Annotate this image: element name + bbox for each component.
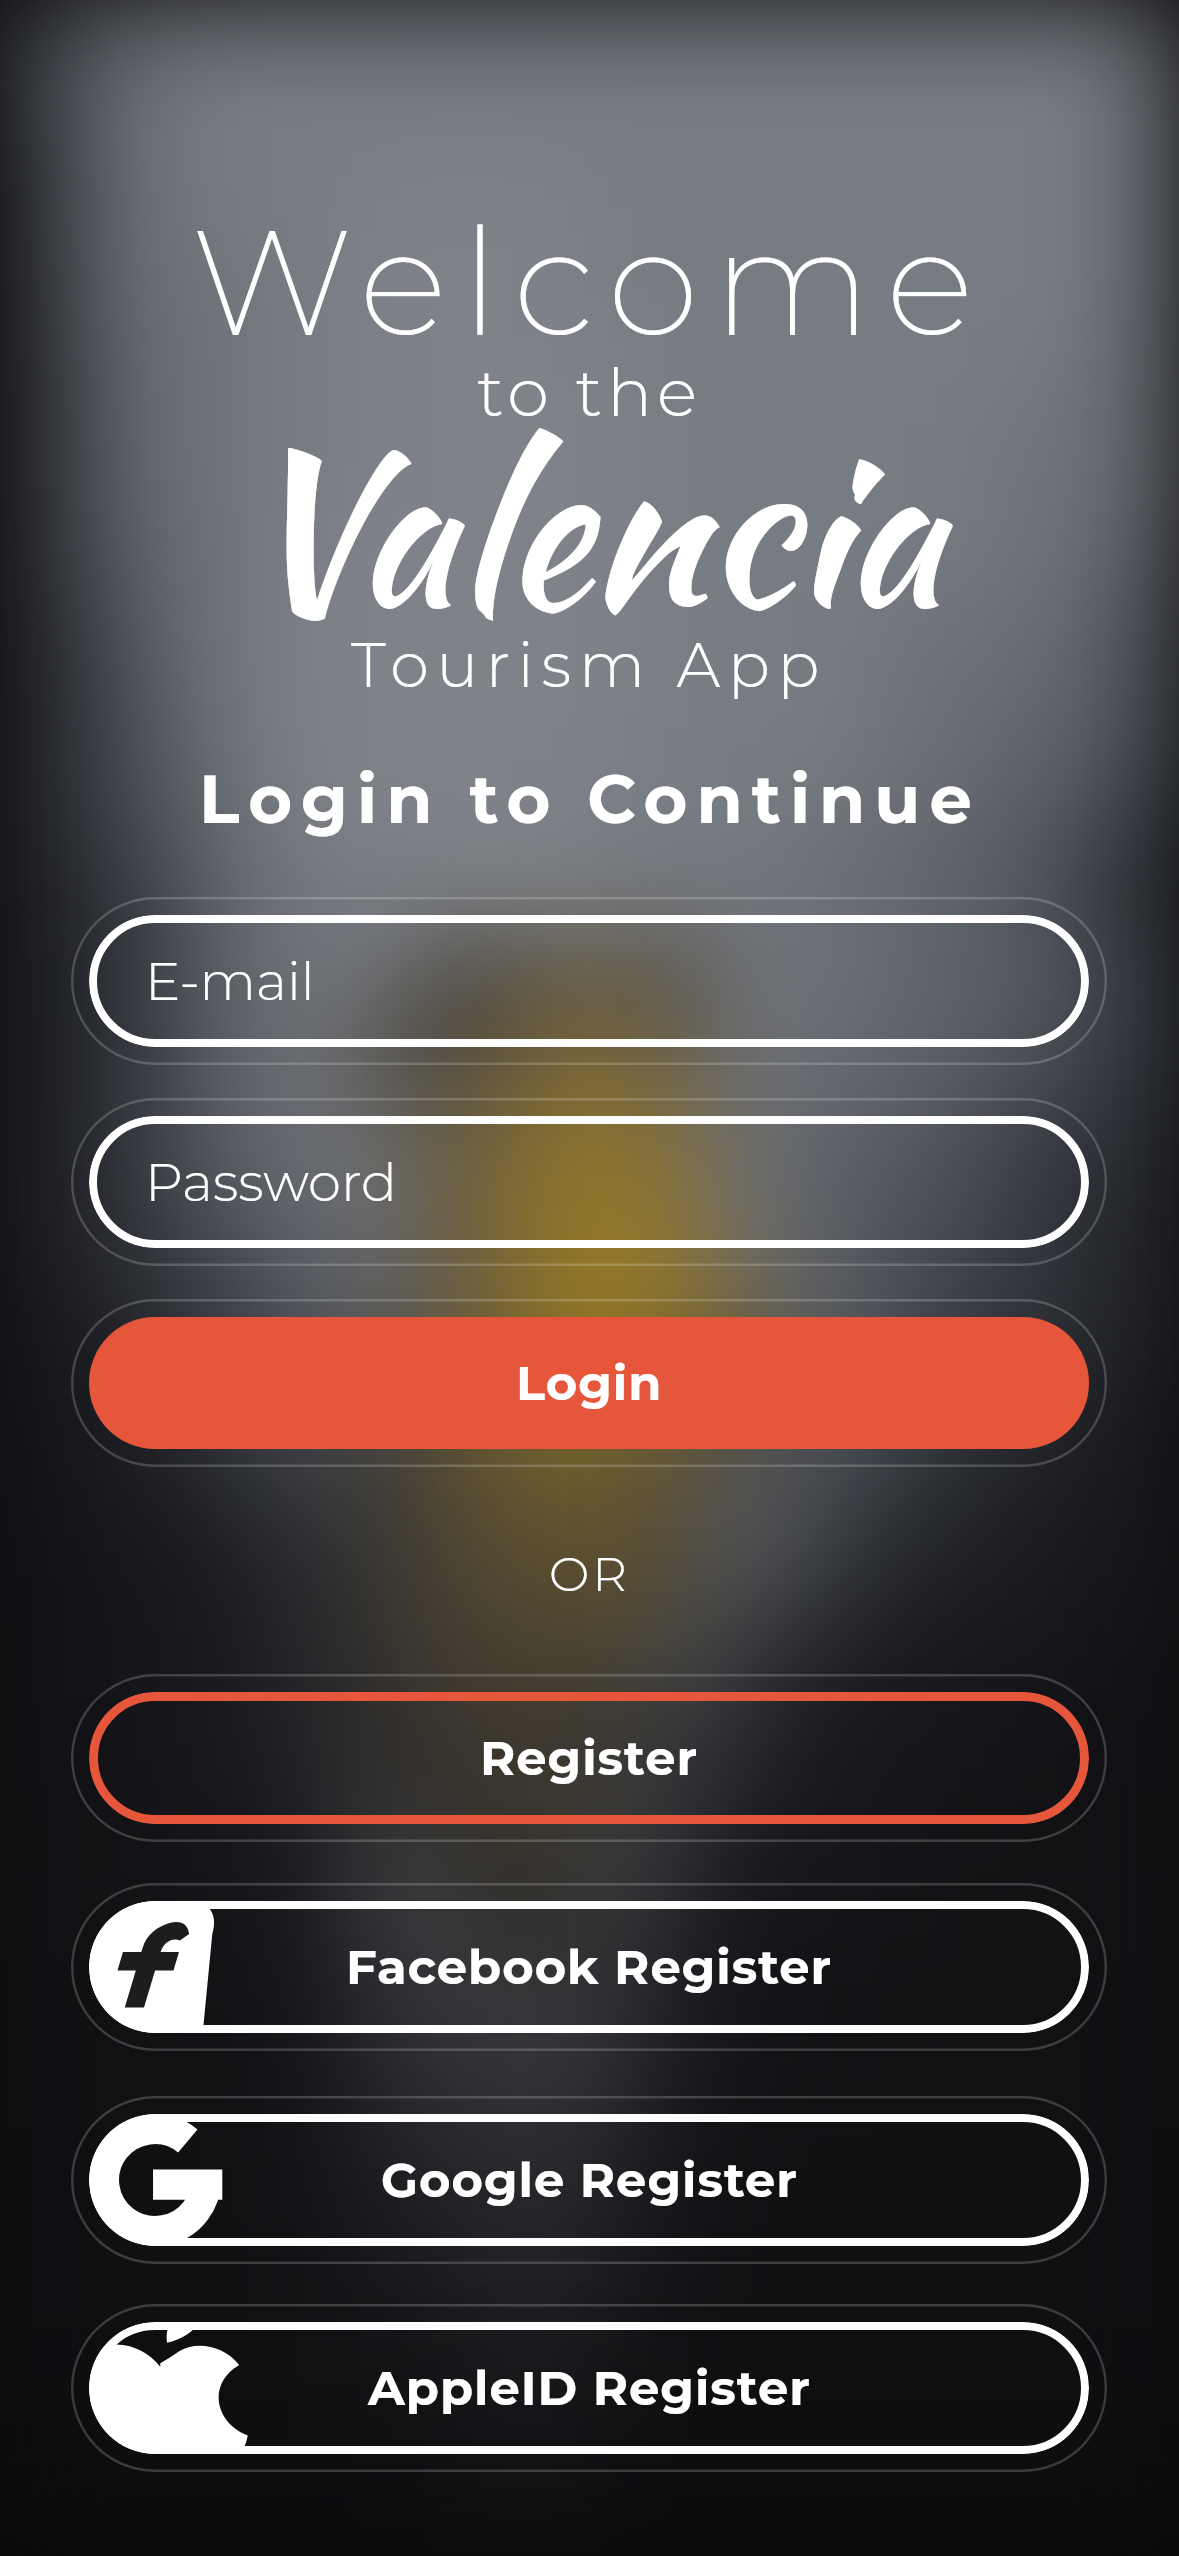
staticText: Login to Continue xyxy=(199,758,981,840)
button[interactable]: Password xyxy=(89,1116,1089,1248)
staticText: AppleID Register xyxy=(368,2359,811,2418)
staticText: Login xyxy=(516,1354,663,1413)
button[interactable]: AppleID Register xyxy=(89,2322,1089,2454)
staticText: Password xyxy=(145,1150,397,1215)
staticText: Facebook Register xyxy=(346,1938,833,1997)
staticText: E-mail xyxy=(145,949,315,1014)
staticText: Tourism App xyxy=(351,627,828,703)
staticText: Valencia xyxy=(236,375,943,683)
button[interactable]: Facebook Register xyxy=(89,1901,1089,2033)
staticText: Welcome xyxy=(191,191,988,373)
button[interactable]: Google Register xyxy=(89,2114,1089,2246)
button[interactable]: Login xyxy=(89,1317,1089,1449)
staticText: Google Register xyxy=(381,2151,798,2210)
staticText: OR xyxy=(549,1545,630,1604)
button[interactable]: E-mail xyxy=(89,915,1089,1047)
staticText: to the xyxy=(477,351,702,433)
staticText: Register xyxy=(480,1729,699,1788)
button[interactable]: Register xyxy=(89,1692,1089,1824)
